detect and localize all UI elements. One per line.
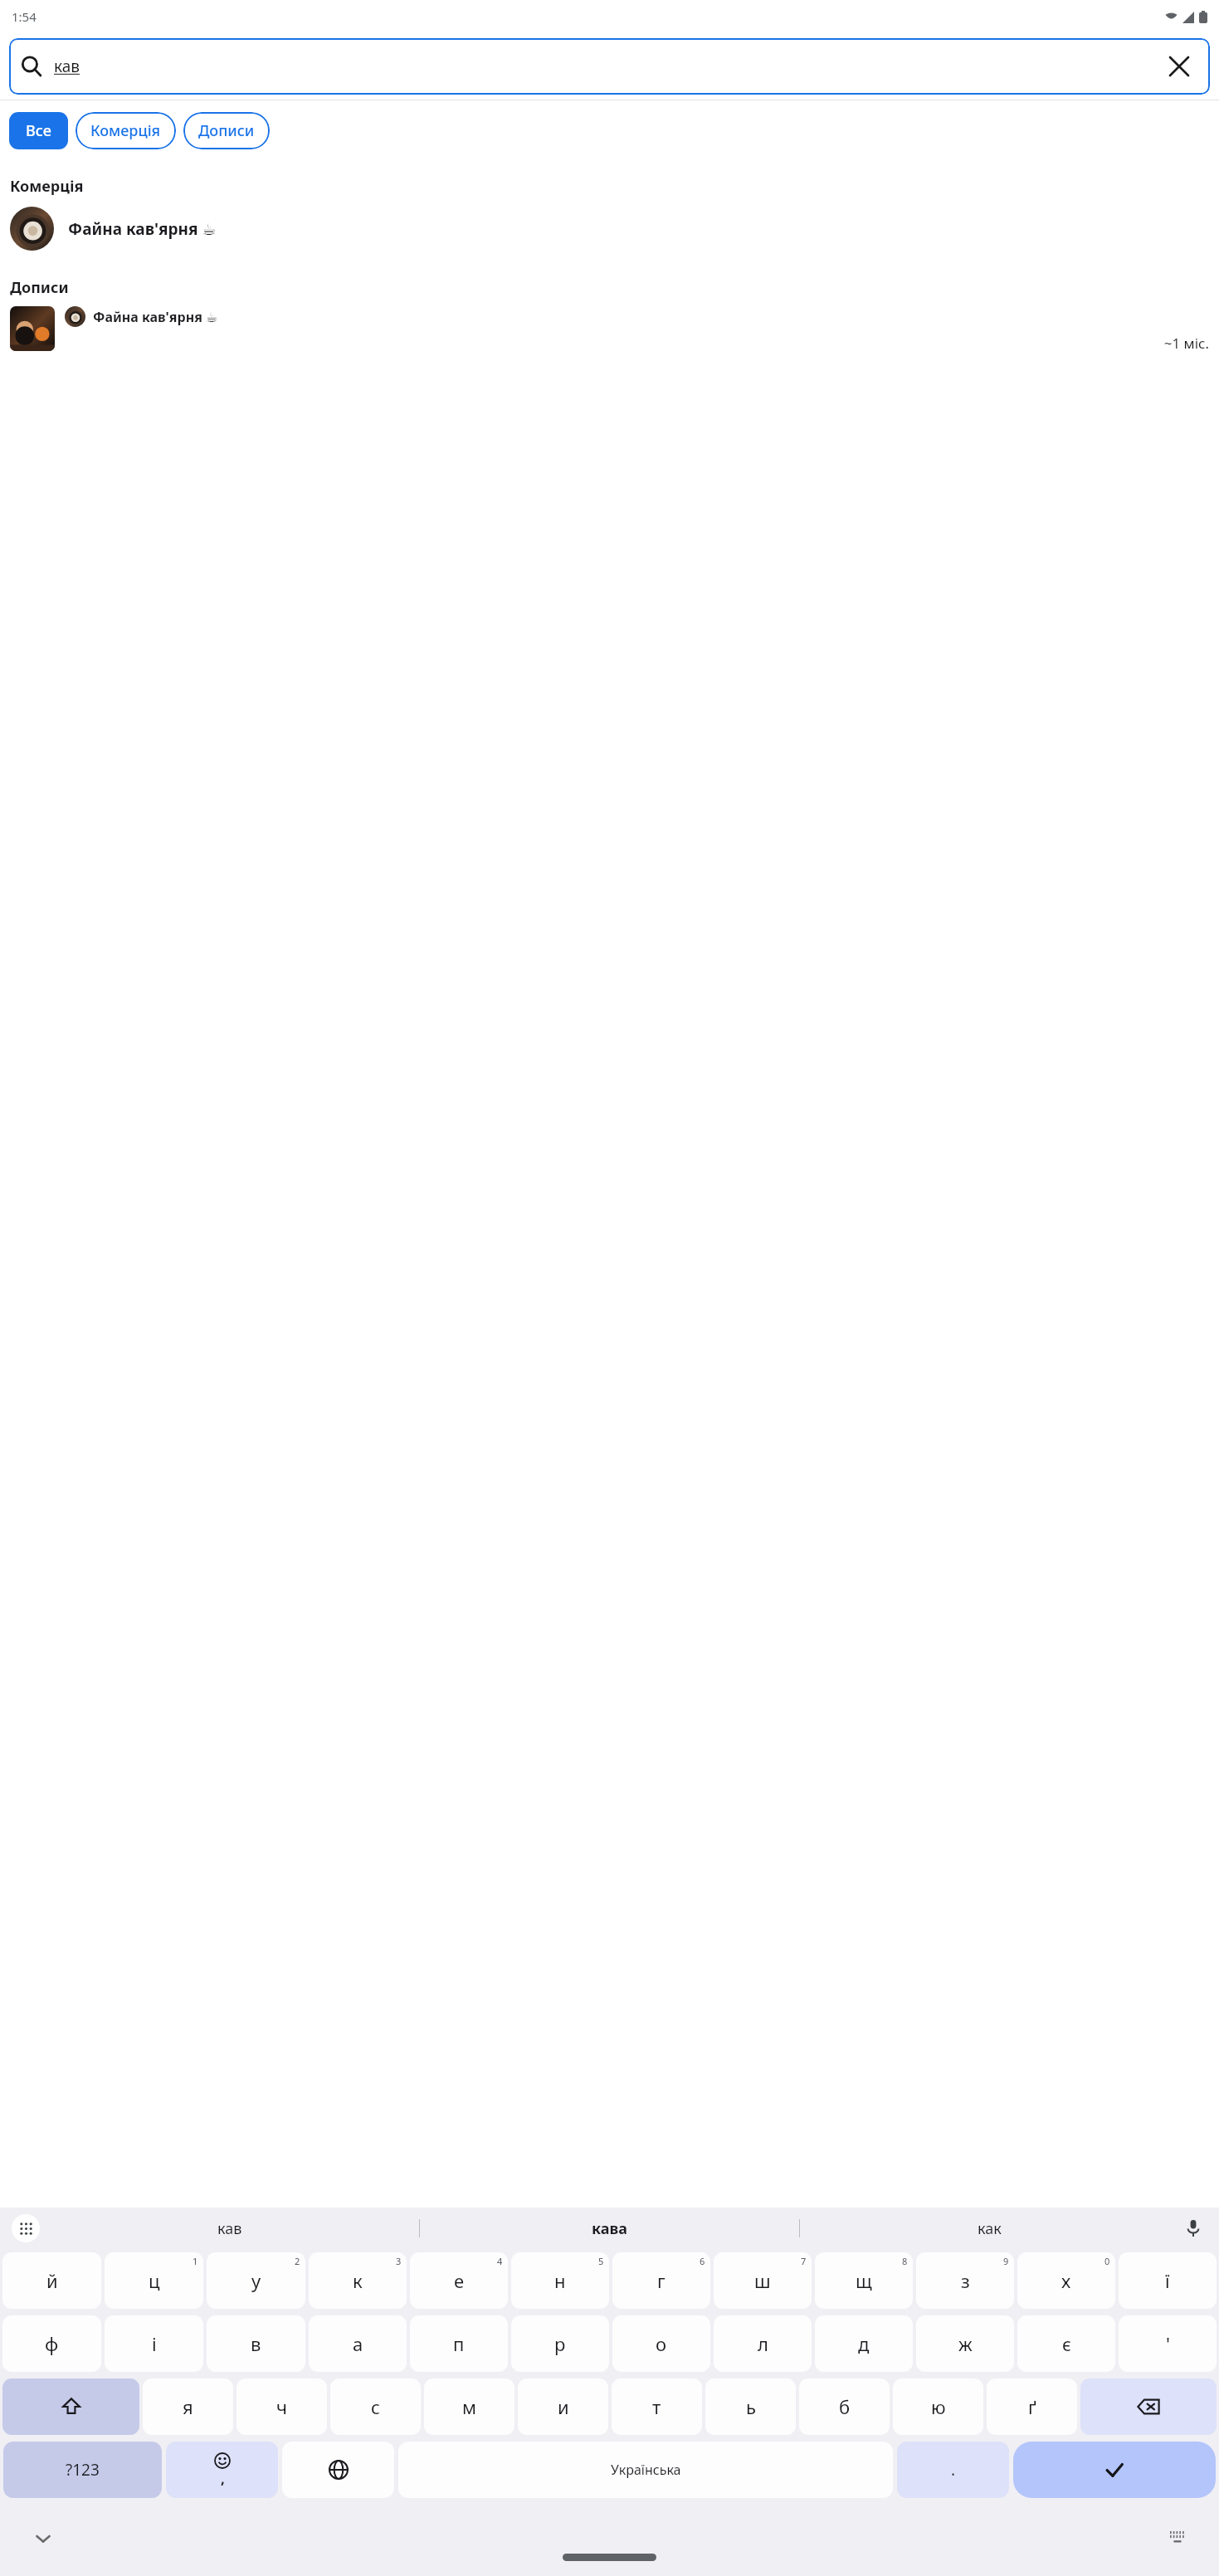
button[interactable]: Search [9, 38, 1210, 95]
button[interactable]: с [330, 2378, 421, 2435]
staticText: й [46, 2268, 58, 2293]
button[interactable]: ї [1119, 2252, 1217, 2309]
staticText: г [657, 2268, 666, 2293]
staticText: п [453, 2331, 465, 2356]
staticText: Комерція [90, 120, 161, 141]
button[interactable]: кава [420, 2218, 799, 2239]
staticText: 4 [497, 2255, 503, 2267]
button[interactable]: Voice input [1179, 2214, 1207, 2242]
button[interactable]: н [511, 2252, 609, 2309]
button[interactable]: Shift [2, 2378, 139, 2435]
staticText: ф [45, 2331, 59, 2356]
staticText: кав [54, 56, 80, 77]
button[interactable]: Комерція [76, 112, 176, 149]
staticText: к [353, 2268, 363, 2293]
staticText: е [454, 2268, 465, 2293]
button[interactable]: как [800, 2218, 1179, 2239]
button[interactable]: ч [236, 2378, 327, 2435]
button[interactable]: м [424, 2378, 514, 2435]
staticText: у [251, 2268, 261, 2293]
button[interactable]: а [309, 2315, 407, 2372]
button[interactable]: п [410, 2315, 508, 2372]
button[interactable]: б [799, 2378, 890, 2435]
button[interactable]: Hide keyboard [25, 2520, 61, 2557]
staticText: Дописи [10, 277, 69, 298]
staticText: ґ [1028, 2394, 1036, 2419]
button[interactable]: Все [9, 112, 68, 149]
staticText: щ [856, 2268, 872, 2293]
staticText: а [353, 2331, 363, 2356]
button[interactable]: ю [893, 2378, 983, 2435]
button[interactable]: и [518, 2378, 608, 2435]
staticText: з [961, 2268, 970, 2293]
staticText: Файна кав'ярня ☕ [93, 308, 218, 326]
staticText: 1 [193, 2255, 198, 2267]
staticText: м [462, 2394, 476, 2419]
button[interactable]: ґ [987, 2378, 1077, 2435]
staticText: ю [931, 2394, 946, 2419]
button[interactable]: Clear [1158, 46, 1200, 87]
button[interactable]: Enter [1013, 2442, 1216, 2498]
staticText: ж [958, 2331, 973, 2356]
button[interactable]: з [916, 2252, 1014, 2309]
button[interactable]: ф [2, 2315, 101, 2372]
button[interactable]: ?123 [3, 2442, 162, 2498]
button[interactable]: є [1017, 2315, 1115, 2372]
staticText: ц [149, 2268, 160, 2293]
button[interactable]: ж [916, 2315, 1014, 2372]
staticText: ч [276, 2394, 287, 2419]
button[interactable]: ц [105, 2252, 203, 2309]
staticText: 8 [902, 2255, 908, 2267]
button[interactable]: . [897, 2442, 1009, 2498]
button[interactable]: й [2, 2252, 101, 2309]
button[interactable]: р [511, 2315, 609, 2372]
button[interactable]: о [612, 2315, 710, 2372]
staticText: я [183, 2394, 193, 2419]
staticText: 5 [598, 2255, 604, 2267]
button[interactable]: г [612, 2252, 710, 2309]
button[interactable]: я [143, 2378, 233, 2435]
button[interactable]: д [815, 2315, 913, 2372]
staticText: 9 [1003, 2255, 1009, 2267]
staticText: 0 [1104, 2255, 1110, 2267]
button[interactable]: т [612, 2378, 702, 2435]
button[interactable]: Emoji [166, 2442, 278, 2498]
button[interactable]: в [207, 2315, 305, 2372]
button[interactable]: Українська [398, 2442, 893, 2498]
staticText: л [758, 2331, 768, 2356]
staticText: 7 [801, 2255, 807, 2267]
staticText: ш [754, 2268, 771, 2293]
button[interactable]: е [410, 2252, 508, 2309]
button[interactable]: кав [40, 2218, 419, 2239]
button[interactable]: і [105, 2315, 203, 2372]
staticText: т [652, 2394, 661, 2419]
button[interactable]: Apps [12, 2214, 40, 2242]
button[interactable]: Backspace [1080, 2378, 1217, 2435]
button[interactable]: Дописи [183, 112, 270, 149]
staticText: в [251, 2331, 261, 2356]
button[interactable]: Change language [282, 2442, 394, 2498]
staticText: Комерція [10, 176, 84, 197]
button[interactable]: Файна кав'ярня ☕ [0, 202, 1219, 256]
staticText: Дописи [198, 120, 255, 141]
button[interactable]: Switch keyboard [1161, 2522, 1194, 2555]
staticText: д [858, 2331, 870, 2356]
staticText: б [839, 2394, 851, 2419]
staticText: кав [217, 2218, 242, 2239]
staticText: х [1061, 2268, 1071, 2293]
staticText: н [554, 2268, 566, 2293]
button[interactable]: ш [714, 2252, 812, 2309]
button[interactable]: ' [1119, 2315, 1217, 2372]
button[interactable]: ь [705, 2378, 796, 2435]
staticText: 2 [295, 2255, 300, 2267]
staticText: с [371, 2394, 380, 2419]
button[interactable]: х [1017, 2252, 1115, 2309]
button[interactable]: щ [815, 2252, 913, 2309]
staticText: ь [746, 2394, 756, 2419]
button[interactable]: л [714, 2315, 812, 2372]
staticText: ~1 міс. [65, 334, 1209, 353]
button[interactable]: Файна кав'ярня ☕ [0, 303, 1219, 356]
button[interactable]: к [309, 2252, 407, 2309]
staticText: Файна кав'ярня ☕ [68, 218, 217, 240]
button[interactable]: у [207, 2252, 305, 2309]
